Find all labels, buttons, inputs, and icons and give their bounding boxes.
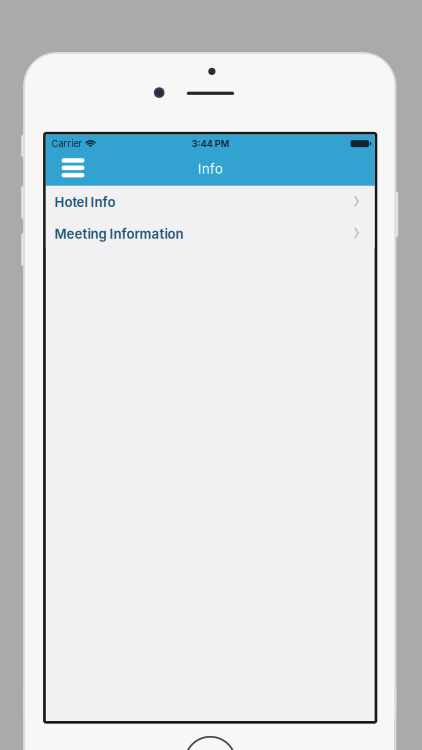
staticText: Hotel Info	[54, 194, 115, 210]
button[interactable]: Meeting Information	[46, 217, 375, 248]
staticText: Info	[198, 161, 223, 177]
button[interactable]: Hotel Info	[46, 186, 375, 217]
staticText: Meeting Information	[54, 226, 183, 242]
button[interactable]: Open menu	[46, 153, 94, 183]
staticText: 3:44 PM	[192, 138, 229, 149]
staticText: Carrier	[51, 138, 81, 149]
